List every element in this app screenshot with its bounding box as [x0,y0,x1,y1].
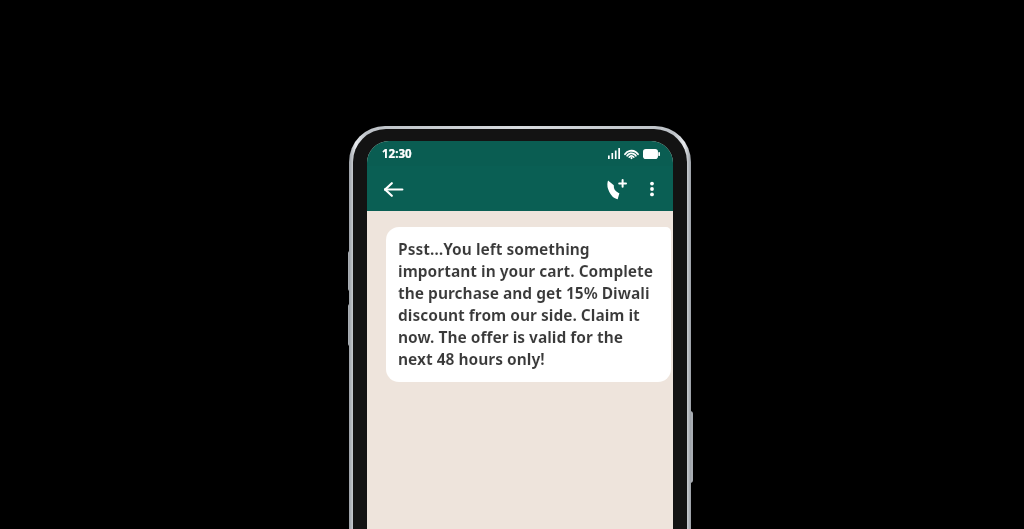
staticText: Psst…You left something important in you… [398,238,659,369]
staticText: 12:30 [382,146,412,162]
button[interactable]: Add call [599,171,635,207]
button[interactable]: More options [635,172,669,206]
button[interactable]: Psst…You left something important in you… [386,227,671,382]
button[interactable]: Back [375,171,411,207]
